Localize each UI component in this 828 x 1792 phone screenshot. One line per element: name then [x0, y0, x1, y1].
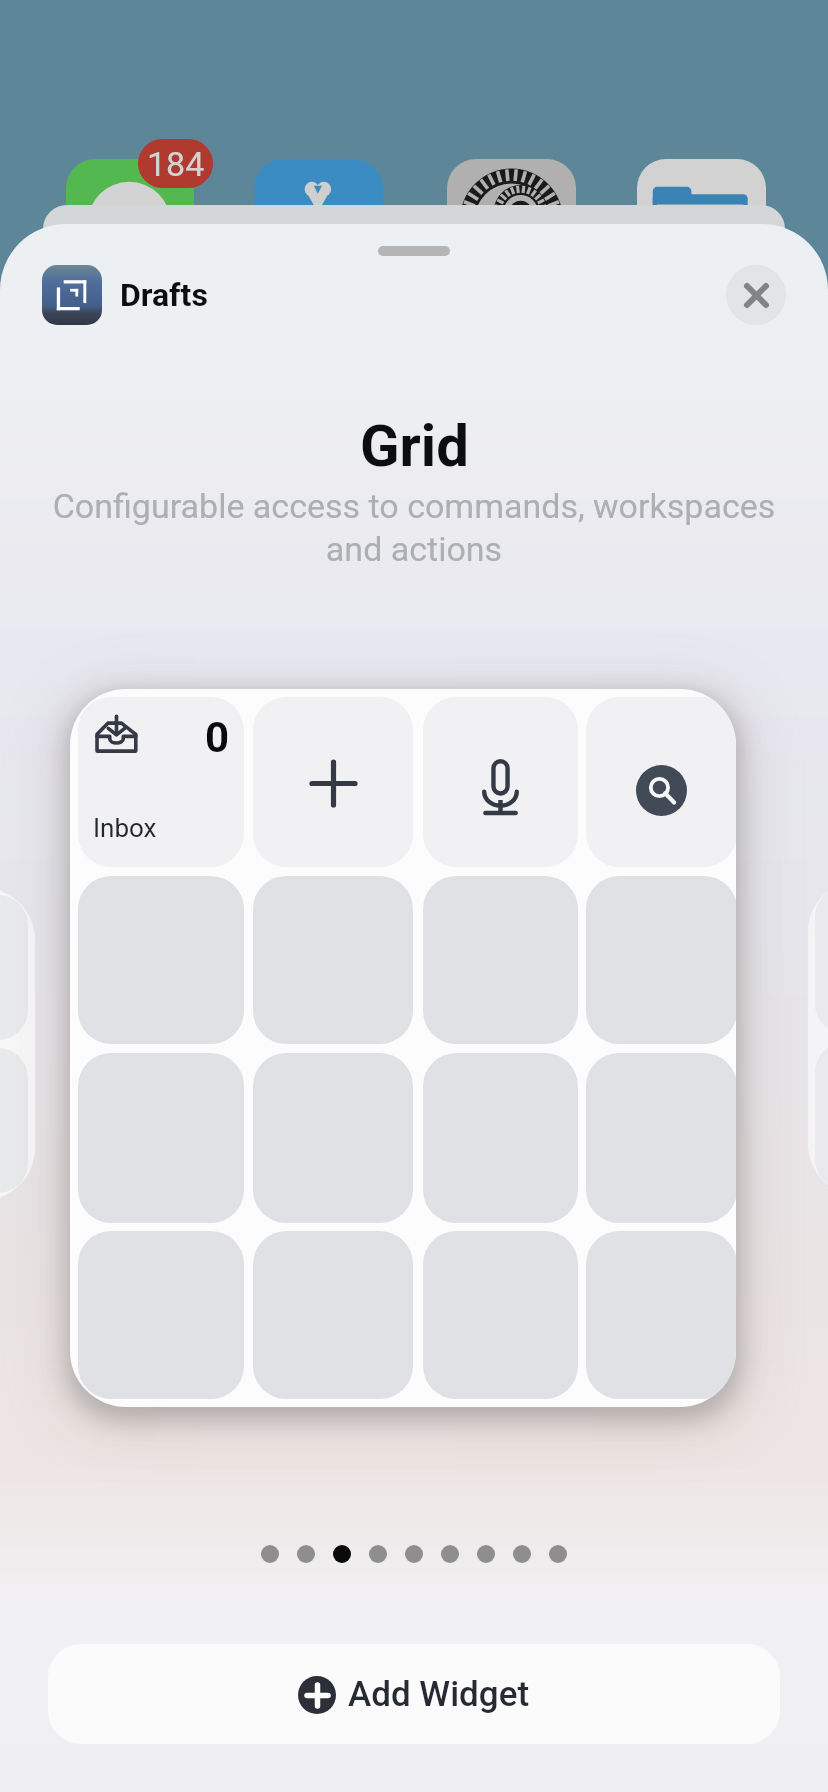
- button[interactable]: 0: [78, 697, 244, 867]
- button[interactable]: [253, 1053, 413, 1223]
- button[interactable]: [423, 697, 578, 867]
- button[interactable]: [423, 1053, 578, 1223]
- button[interactable]: [586, 697, 736, 867]
- button[interactable]: [253, 876, 413, 1044]
- button[interactable]: [253, 697, 413, 867]
- button[interactable]: [586, 1053, 736, 1223]
- staticText: Drafts: [120, 276, 208, 314]
- button[interactable]: [253, 1231, 413, 1399]
- button[interactable]: [586, 876, 736, 1044]
- button[interactable]: [78, 876, 244, 1044]
- button[interactable]: [586, 1231, 736, 1399]
- button[interactable]: Close: [726, 265, 786, 325]
- staticText: Inbox: [93, 813, 157, 843]
- staticText: 184: [147, 144, 205, 184]
- staticText: 0: [205, 713, 230, 762]
- staticText: Add Widget: [348, 1674, 530, 1715]
- button[interactable]: [78, 1231, 244, 1399]
- button[interactable]: Add Widget: [48, 1644, 780, 1744]
- button[interactable]: [423, 876, 578, 1044]
- button[interactable]: [78, 1053, 244, 1223]
- staticText: Configurable access to commands, workspa…: [44, 486, 784, 569]
- staticText: Grid: [360, 412, 469, 480]
- button[interactable]: [423, 1231, 578, 1399]
